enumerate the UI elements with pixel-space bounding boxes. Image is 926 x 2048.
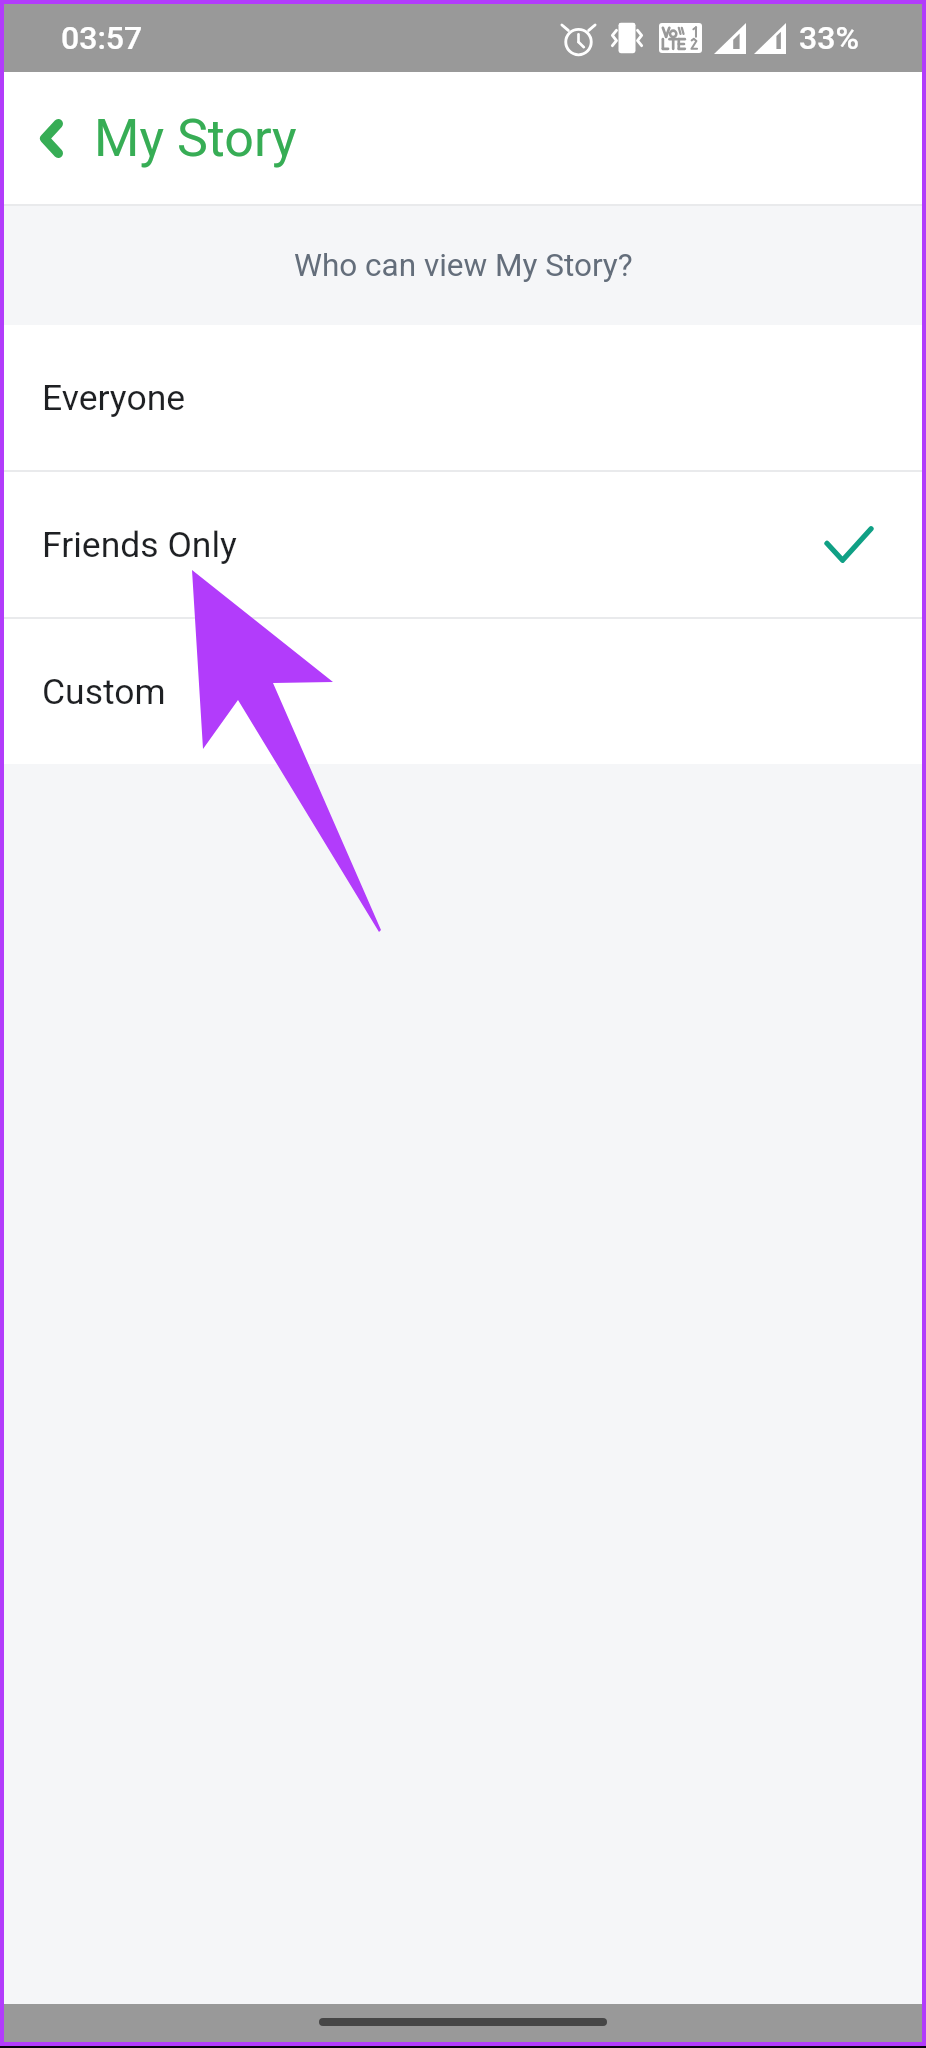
button[interactable]: Everyone xyxy=(4,325,922,470)
staticText: My Story xyxy=(94,108,297,169)
staticText: Everyone xyxy=(42,377,186,419)
button[interactable]: Friends Only xyxy=(4,472,922,617)
button[interactable]: Back xyxy=(17,104,85,172)
staticText: 03:57 xyxy=(61,19,143,57)
staticText: Friends Only xyxy=(42,524,237,566)
staticText: Who can view My Story? xyxy=(294,247,633,284)
button[interactable]: Custom xyxy=(4,619,922,764)
staticText: 33% xyxy=(799,19,859,57)
staticText: Custom xyxy=(42,671,166,713)
